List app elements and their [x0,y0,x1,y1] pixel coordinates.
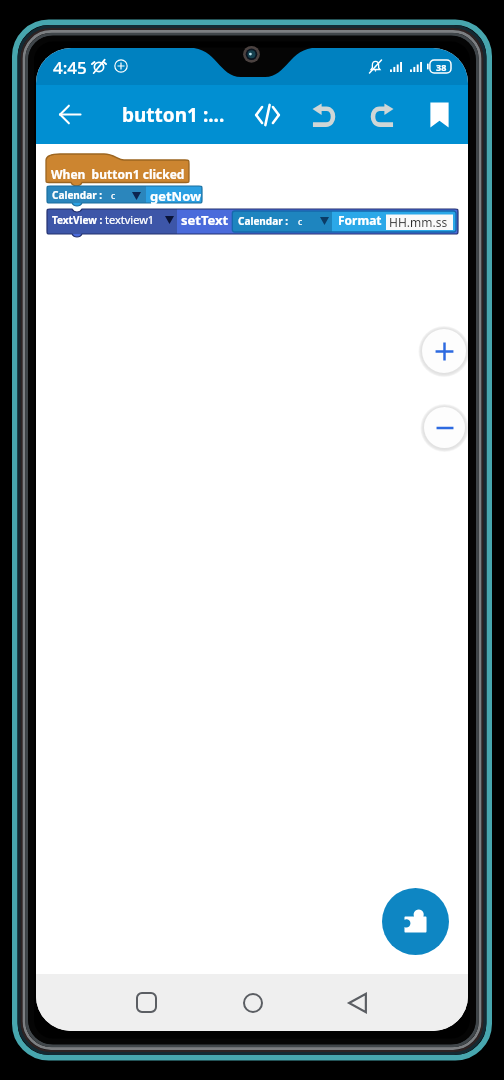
button[interactable]: Recent apps [118,974,175,1031]
button[interactable]: Back [41,85,99,144]
button[interactable]: button1 :... [117,85,229,144]
button[interactable]: Bookmark [416,85,462,144]
staticText: Calendar : [238,214,289,228]
staticText: textview1 [105,212,155,227]
staticText: c [298,215,303,227]
staticText: getNow [150,187,202,205]
staticText: Calendar : [52,188,103,202]
button[interactable]: Undo [300,85,348,144]
staticText: HH.mm.ss [389,214,448,230]
button[interactable]: Home [224,974,281,1031]
staticText: setText [181,211,229,229]
staticText: c [111,189,116,201]
staticText: 38 [436,61,447,73]
button[interactable]: Redo [358,85,406,144]
button[interactable]: Back [329,974,386,1031]
staticText: button1 :... [122,102,225,128]
button[interactable]: View source code [243,85,291,144]
staticText: 4:45 [53,56,87,79]
staticText: Format [338,212,382,228]
staticText: When button1 clicked [51,166,185,182]
staticText: TextView : [52,213,103,227]
button[interactable]: Add block [382,888,449,955]
button[interactable]: Zoom out [424,407,465,448]
button[interactable]: Zoom in [422,329,466,373]
